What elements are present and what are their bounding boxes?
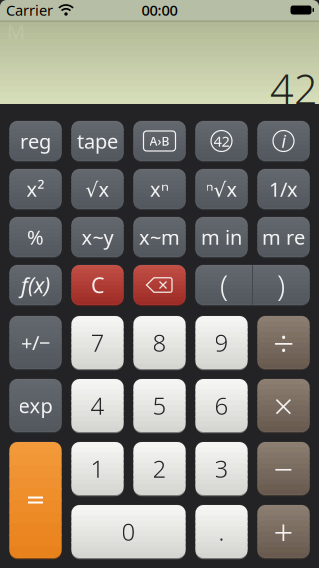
button[interactable]: 6 [195, 379, 247, 432]
staticText: 2 [152, 453, 166, 484]
staticText: 3 [214, 453, 228, 484]
button[interactable]: exp [9, 379, 61, 432]
staticText: − [273, 445, 293, 491]
staticText: ⁿ√x [205, 176, 237, 202]
button[interactable]: f(x) [9, 265, 61, 305]
staticText: 4 [90, 390, 104, 421]
button[interactable]: Info [257, 121, 309, 161]
button[interactable]: x~m [133, 217, 185, 257]
button[interactable]: Equals [9, 442, 61, 558]
button[interactable]: ÷ [257, 316, 309, 369]
staticText: m re [262, 224, 305, 250]
button[interactable]: 1 [71, 442, 123, 495]
staticText: 00:00 [141, 0, 177, 20]
staticText: 9 [214, 327, 228, 358]
button[interactable]: 42 [195, 121, 247, 161]
button[interactable]: m re [257, 217, 309, 257]
button[interactable]: 0 [71, 505, 185, 558]
staticText: i [281, 129, 285, 152]
staticText: % [27, 224, 44, 250]
staticText: f(x) [21, 271, 50, 299]
staticText: exp [18, 392, 52, 419]
button[interactable]: 2 [133, 442, 185, 495]
button[interactable]: 8 [133, 316, 185, 369]
staticText: ) [277, 265, 285, 304]
staticText: 5 [152, 390, 166, 421]
button[interactable]: m in [195, 217, 247, 257]
button[interactable]: Backspace [133, 265, 185, 305]
staticText: 6 [214, 390, 228, 421]
staticText: √x [85, 176, 109, 202]
button[interactable]: 7 [71, 316, 123, 369]
button[interactable]: 5 [133, 379, 185, 432]
button[interactable]: C [71, 265, 123, 305]
staticText: tape [77, 128, 118, 154]
staticText: + [273, 508, 293, 554]
button[interactable]: . [195, 505, 247, 558]
staticText: x² [26, 176, 44, 202]
button[interactable]: xⁿ [133, 169, 185, 209]
staticText: ( [220, 265, 228, 304]
staticText: 0 [121, 516, 135, 547]
button[interactable]: × [257, 379, 309, 432]
button[interactable]: ⁿ√x [195, 169, 247, 209]
button[interactable]: 4 [71, 379, 123, 432]
staticText: +/− [21, 329, 50, 356]
staticText: 7 [90, 327, 104, 358]
staticText: 8 [152, 327, 166, 358]
staticText: ÷ [273, 318, 294, 367]
button[interactable]: 1/x [257, 169, 309, 209]
button[interactable]: x² [9, 169, 61, 209]
button[interactable]: ( [195, 265, 309, 305]
staticText: xⁿ [150, 176, 169, 202]
staticText: x~y [81, 224, 113, 250]
staticText: M [7, 18, 25, 45]
button[interactable]: % [9, 217, 61, 257]
button[interactable]: √x [71, 169, 123, 209]
button[interactable]: 9 [195, 316, 247, 369]
button[interactable]: 3 [195, 442, 247, 495]
button[interactable]: A›B [133, 121, 185, 161]
staticText: C [91, 271, 104, 299]
staticText: reg [20, 128, 51, 154]
button[interactable]: + [257, 505, 309, 558]
button[interactable]: tape [71, 121, 123, 161]
button[interactable]: +/− [9, 316, 61, 369]
staticText: 42 [213, 131, 229, 151]
staticText: A›B [149, 133, 169, 149]
staticText: 1 [90, 453, 104, 484]
button[interactable]: − [257, 442, 309, 495]
staticText: 1/x [269, 176, 298, 202]
staticText: 42 [270, 61, 318, 116]
staticText: m in [201, 224, 242, 250]
staticText: . [218, 516, 224, 547]
staticText: x~m [139, 224, 180, 250]
staticText: × [273, 382, 293, 428]
staticText: Carrier [6, 0, 53, 20]
button[interactable]: reg [9, 121, 61, 161]
button[interactable]: x~y [71, 217, 123, 257]
